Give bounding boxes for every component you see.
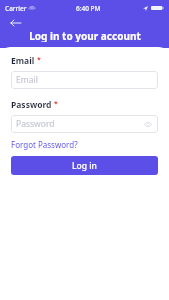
button[interactable]: Password	[11, 115, 158, 133]
staticText: Log in to your account	[29, 29, 141, 42]
staticText: *	[54, 99, 58, 109]
staticText: Email	[11, 55, 35, 67]
staticText: Email	[16, 74, 38, 86]
staticText: Carrier	[5, 4, 27, 13]
staticText: Password	[16, 118, 55, 130]
staticText: Log in	[72, 160, 97, 172]
button[interactable]: Log in	[11, 156, 158, 175]
button[interactable]: Show password	[143, 119, 153, 129]
button[interactable]: Back	[7, 16, 23, 29]
staticText: 6:40 PM	[76, 4, 101, 13]
button[interactable]: Forgot Password?	[11, 138, 78, 151]
button[interactable]: Email	[11, 71, 158, 89]
staticText: Forgot Password?	[11, 139, 78, 150]
staticText: *	[37, 55, 41, 65]
staticText: Password	[11, 99, 52, 111]
